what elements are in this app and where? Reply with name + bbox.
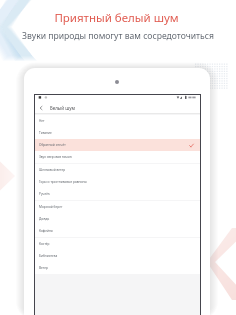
staticText: Белый шум [50, 105, 75, 111]
button[interactable]: Ручеёк [35, 188, 200, 200]
button[interactable]: Обратный отсчёт [35, 139, 200, 151]
staticText: Приятный белый шум [54, 10, 179, 26]
button[interactable]: Звук сверчков ночью [35, 151, 200, 163]
staticText: Дождь [39, 217, 50, 221]
staticText: Кофейня [39, 229, 53, 233]
staticText: Морской берег [39, 205, 63, 209]
staticText: Нет [39, 119, 45, 123]
button[interactable]: Нет [35, 115, 200, 127]
button[interactable]: Тикание [35, 127, 200, 139]
staticText: Ручеёк [39, 192, 50, 196]
button[interactable]: Библиотека [35, 250, 200, 262]
staticText: Звуки природы помогут вам сосредоточитьс… [22, 30, 214, 42]
staticText: Шелковый ветер [39, 168, 66, 172]
staticText: Костёр [39, 242, 50, 246]
button[interactable]: Назад [35, 102, 47, 113]
staticText: Звук сверчков ночью [39, 155, 72, 159]
staticText: Ветер [39, 266, 48, 270]
staticText: Обратный отсчёт [39, 143, 66, 147]
button[interactable]: Костёр [35, 238, 200, 250]
button[interactable]: Морской берег [35, 201, 200, 213]
button[interactable]: Ветер [35, 262, 200, 274]
button[interactable]: Кофейня [35, 225, 200, 237]
button[interactable]: Горы и тростниковые равнины [35, 176, 200, 188]
staticText: Тикание [39, 131, 52, 135]
staticText: Горы и тростниковые равнины [39, 180, 87, 184]
button[interactable]: Шелковый ветер [35, 164, 200, 176]
staticText: Библиотека [39, 254, 58, 258]
button[interactable]: Дождь [35, 213, 200, 225]
